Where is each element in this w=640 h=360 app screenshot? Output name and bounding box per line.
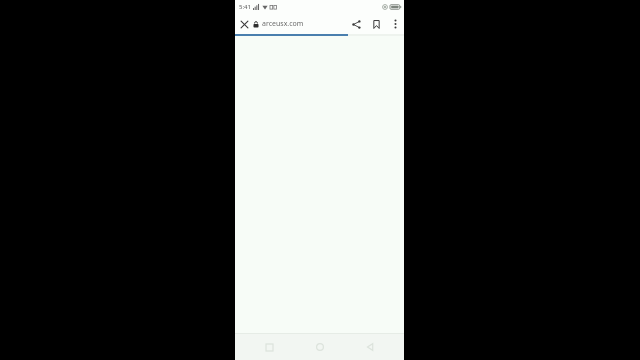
button[interactable]: More options	[386, 14, 404, 34]
staticText: 5:41	[239, 3, 251, 11]
button[interactable]: Home	[303, 334, 337, 360]
button[interactable]: Share	[346, 14, 366, 34]
button[interactable]: Close	[235, 14, 253, 34]
button[interactable]: Recent apps	[252, 334, 286, 360]
button[interactable]: Back	[353, 334, 387, 360]
staticText: arceusx.com	[262, 19, 304, 29]
button[interactable]: Bookmark	[366, 14, 386, 34]
